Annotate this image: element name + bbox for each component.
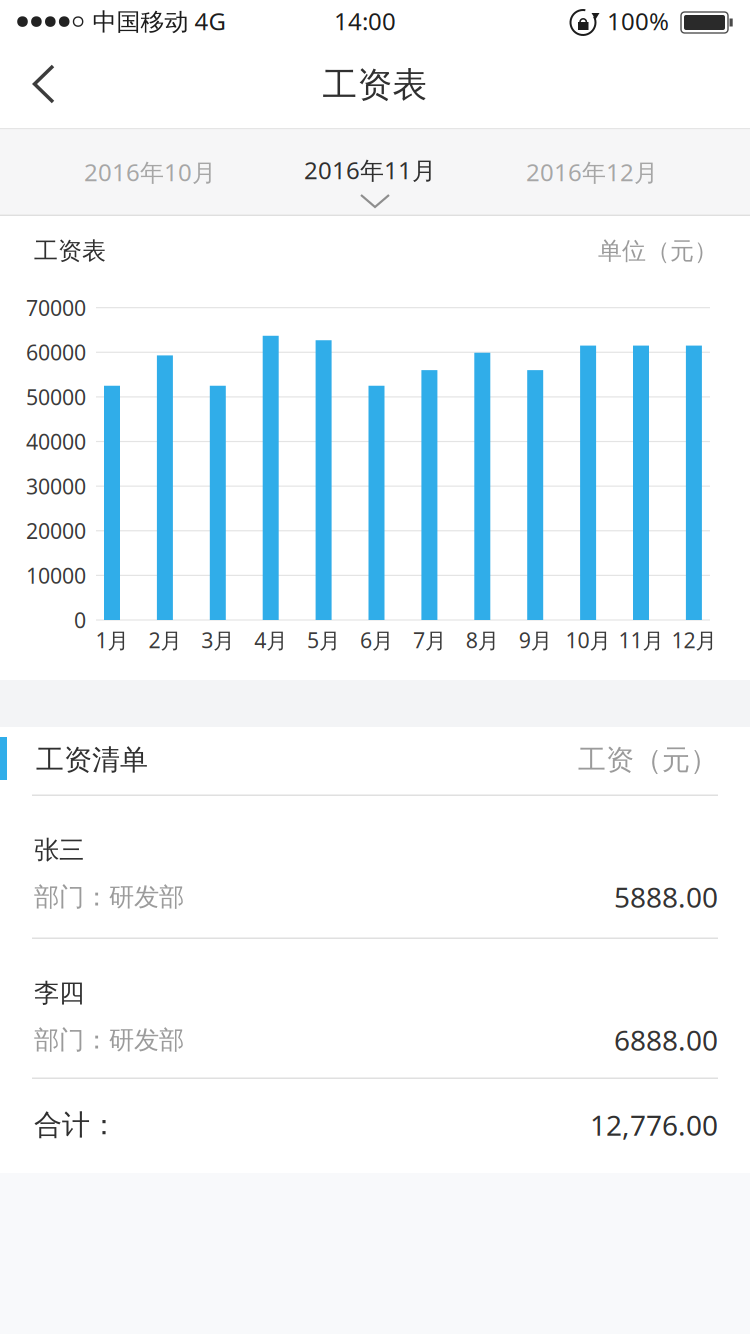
staticText: 70000 (26, 293, 86, 322)
staticText: 12,776.00 (590, 1106, 718, 1144)
staticText: 2月 (148, 626, 181, 654)
staticText: 工资表 (322, 64, 427, 106)
button[interactable]: 2016年11月 (260, 128, 480, 216)
staticText: 8月 (466, 626, 499, 654)
staticText: 10月 (566, 626, 611, 654)
staticText: 7月 (413, 626, 446, 654)
staticText: 单位（元） (598, 236, 718, 266)
staticText: 部门：研发部 (34, 881, 184, 912)
staticText: 9月 (519, 626, 552, 654)
staticText: 2016年12月 (526, 156, 658, 188)
button[interactable]: 2016年12月 (482, 128, 702, 216)
staticText: 100% (607, 5, 669, 37)
staticText: 14:00 (334, 5, 396, 37)
staticText: 0 (74, 606, 86, 634)
staticText: 6月 (360, 626, 393, 654)
staticText: 20000 (26, 517, 86, 545)
staticText: 张三 (34, 834, 84, 865)
staticText: 1月 (95, 626, 128, 654)
staticText: 工资表 (34, 236, 106, 266)
staticText: 5月 (307, 626, 340, 654)
staticText: 3月 (201, 626, 234, 654)
staticText: 中国移动 4G (92, 5, 225, 37)
button[interactable]: 2016年10月 (40, 128, 260, 216)
staticText: 11月 (618, 626, 663, 654)
staticText: 30000 (26, 472, 86, 500)
staticText: 50000 (26, 383, 86, 411)
staticText: 10000 (26, 561, 86, 589)
staticText: 4月 (254, 626, 287, 654)
staticText: 工资清单 (36, 743, 148, 777)
staticText: 6888.00 (614, 1021, 718, 1059)
staticText: 李四 (34, 977, 84, 1008)
staticText: 合计： (34, 1108, 118, 1142)
staticText: 60000 (26, 338, 86, 366)
staticText: 12月 (671, 626, 716, 654)
staticText: 2016年11月 (304, 154, 436, 186)
staticText: 工资（元） (578, 743, 718, 777)
staticText: 部门：研发部 (34, 1024, 184, 1055)
staticText: 2016年10月 (84, 156, 216, 188)
button[interactable]: Back (8, 46, 80, 118)
staticText: 40000 (26, 427, 86, 456)
staticText: 5888.00 (614, 878, 718, 916)
